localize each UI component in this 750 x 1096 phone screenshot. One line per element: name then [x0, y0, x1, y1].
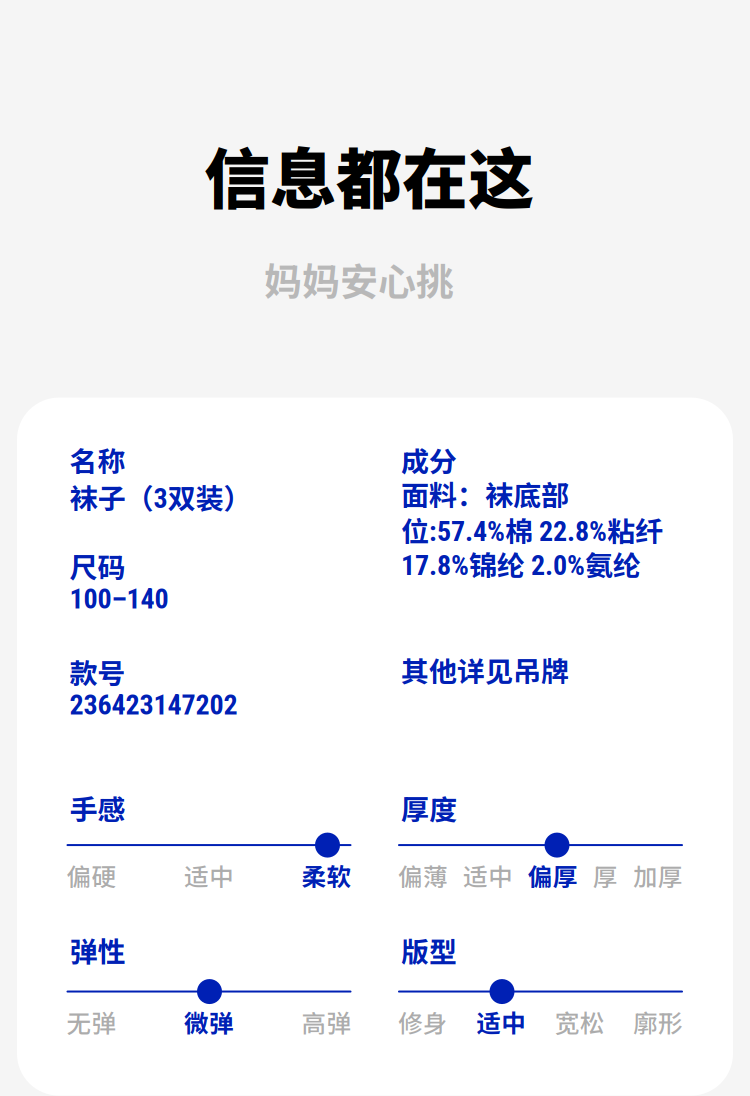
staticText: 版型	[401, 930, 457, 971]
staticText: 适中	[184, 858, 234, 893]
staticText: 偏薄	[398, 858, 448, 893]
staticText: 加厚	[633, 858, 683, 893]
staticText: 其他详见吊牌	[401, 650, 569, 690]
staticText: 236423147202	[69, 689, 237, 721]
staticText: 手感	[69, 788, 125, 828]
staticText: 宽松	[555, 1004, 605, 1040]
staticText: 厚度	[401, 788, 457, 828]
staticText: 100–140	[69, 583, 168, 615]
staticText: 无弹	[66, 1004, 116, 1040]
staticText: 17.8%锦纶 2.0%氨纶	[401, 544, 641, 584]
staticText: 高弹	[301, 1004, 351, 1040]
staticText: 修身	[398, 1004, 448, 1040]
staticText: 妈妈安心挑	[264, 252, 454, 307]
staticText: 位:57.4%棉 22.8%粘纤	[401, 510, 663, 550]
staticText: 款号	[69, 652, 125, 692]
staticText: 柔软	[301, 858, 351, 893]
staticText: 信息都在这	[204, 127, 534, 223]
staticText: 袜子（3双装）	[69, 477, 251, 517]
button[interactable]: 弹性	[66, 930, 351, 1040]
staticText: 适中	[476, 1004, 526, 1040]
staticText: 偏硬	[66, 858, 116, 893]
staticText: 成分	[401, 440, 457, 480]
staticText: 廓形	[633, 1004, 683, 1040]
staticText: 微弹	[184, 1004, 234, 1040]
staticText: 尺码	[69, 546, 125, 586]
button[interactable]: 版型	[398, 930, 683, 1040]
staticText: 弹性	[69, 930, 125, 971]
staticText: 偏厚	[528, 858, 578, 893]
staticText: 厚	[593, 858, 618, 893]
staticText: 适中	[463, 858, 513, 893]
button[interactable]: 手感	[66, 788, 351, 893]
staticText: 面料：袜底部	[401, 474, 569, 514]
staticText: 名称	[69, 440, 125, 480]
button[interactable]: 厚度	[398, 788, 683, 893]
